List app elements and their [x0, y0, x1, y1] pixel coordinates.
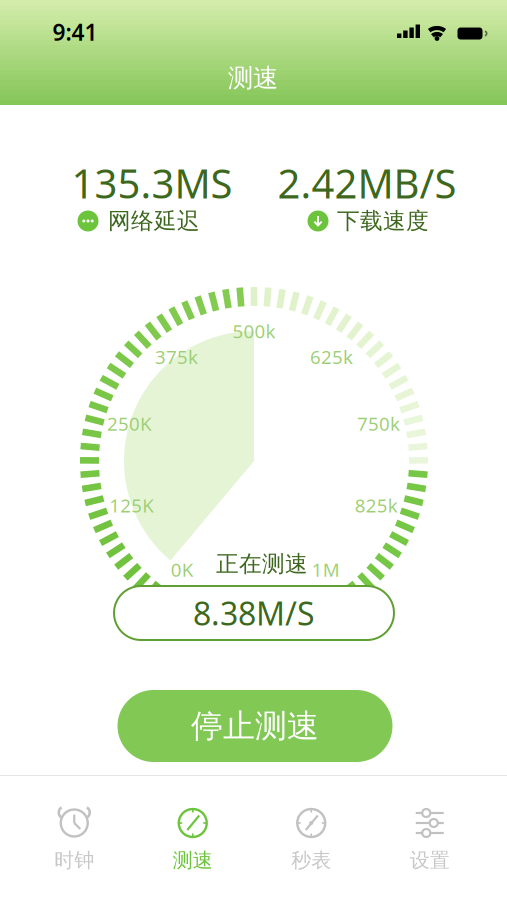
staticText: 125K — [109, 493, 154, 518]
staticText: 秒表 — [291, 848, 331, 873]
button[interactable]: 秒表 — [252, 806, 370, 873]
staticText: 825k — [355, 493, 398, 518]
staticText: 时钟 — [54, 848, 94, 873]
staticText: 375k — [155, 344, 198, 369]
staticText: 625k — [310, 344, 353, 369]
staticText: 正在测速 — [216, 550, 308, 578]
staticText: 网络延迟 — [108, 207, 200, 235]
button[interactable]: 测速 — [133, 806, 252, 873]
staticText: 测速 — [173, 848, 213, 873]
staticText: 下载速度 — [337, 207, 429, 235]
staticText: 135.3MS — [71, 156, 232, 209]
staticText: 750k — [357, 411, 400, 436]
staticText: 1M — [312, 557, 340, 582]
button[interactable]: 设置 — [370, 806, 489, 873]
staticText: 9:41 — [52, 17, 97, 47]
staticText: 250K — [107, 411, 152, 436]
staticText: 测速 — [228, 62, 278, 93]
staticText: 2.42MB/S — [277, 156, 456, 209]
staticText: 8.38M/S — [193, 592, 315, 634]
staticText: 停止测速 — [191, 706, 319, 746]
staticText: 500k — [232, 319, 275, 343]
button[interactable]: 时钟 — [15, 806, 133, 873]
staticText: 设置 — [410, 848, 450, 873]
staticText: 0K — [171, 557, 194, 582]
button[interactable]: 停止测速 — [117, 690, 392, 762]
